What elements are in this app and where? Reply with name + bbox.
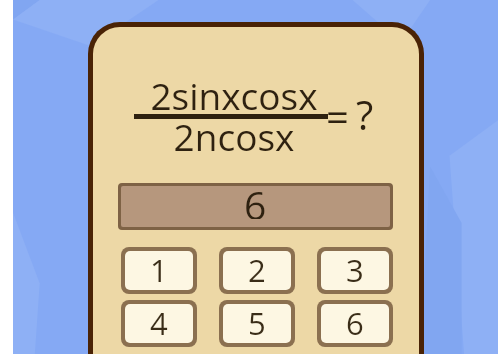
staticText: 6 [346, 304, 364, 341]
staticText: 2sinxcosx [134, 70, 334, 120]
staticText: 4 [150, 304, 168, 341]
button[interactable]: Clear answer [121, 186, 390, 227]
staticText: ? [356, 87, 374, 141]
staticText: 6 [244, 186, 267, 219]
button[interactable]: 5 [223, 304, 291, 343]
button[interactable]: 4 [125, 304, 193, 343]
staticText: 5 [248, 304, 266, 341]
staticText: 2 [248, 251, 266, 288]
button[interactable]: 6 [321, 304, 389, 343]
staticText: 1 [150, 251, 168, 288]
button[interactable]: 1 [125, 251, 193, 290]
button[interactable]: 2 [223, 251, 291, 290]
button[interactable]: 3 [321, 251, 389, 290]
staticText: 2ncosx [134, 111, 334, 161]
staticText: = [326, 89, 349, 143]
staticText: 3 [346, 251, 364, 288]
